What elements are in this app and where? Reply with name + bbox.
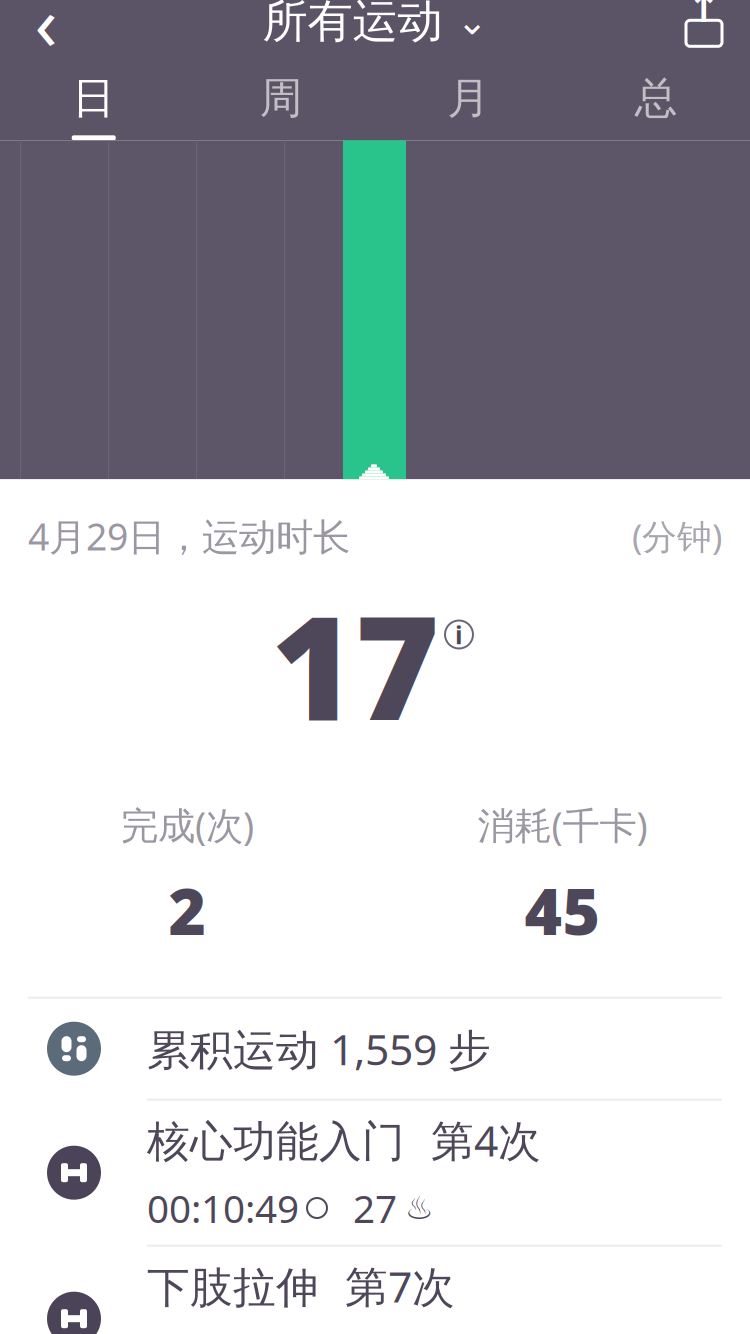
staticText: ♨	[405, 1190, 434, 1226]
button[interactable]: 下肢拉伸 第7次	[0, 1247, 750, 1334]
staticText: ‹	[34, 0, 57, 71]
button[interactable]: 累积运动 1,559 步	[0, 999, 750, 1099]
staticText: ↑	[687, 0, 721, 31]
staticText: 27	[353, 1182, 397, 1234]
staticText: 月	[447, 72, 490, 124]
button[interactable]: 总	[562, 61, 750, 140]
button[interactable]: 核心功能入门 第4次	[0, 1101, 750, 1245]
staticText: 完成(次)	[121, 800, 254, 850]
button[interactable]: 月	[375, 61, 562, 140]
staticText: 45	[524, 868, 600, 953]
staticText: 17	[271, 569, 439, 760]
button[interactable]: 周	[187, 61, 375, 140]
staticText: 4月29日，运动时长	[28, 511, 350, 561]
staticText: 核心功能入门 第4次	[147, 1112, 541, 1168]
staticText: 00:10:49	[147, 1182, 299, 1234]
button[interactable]: 所有运动	[250, 0, 499, 59]
staticText: 总	[635, 72, 678, 124]
staticText: 累积运动 1,559 步	[147, 1020, 491, 1077]
staticText: 下肢拉伸 第7次	[147, 1258, 455, 1314]
button[interactable]: 分享	[666, 0, 742, 59]
staticText: ⌄	[456, 0, 487, 42]
staticText: 周	[260, 72, 303, 124]
staticText: 2	[168, 868, 206, 953]
button[interactable]: 返回	[8, 0, 84, 59]
staticText: (分钟)	[632, 513, 722, 559]
button[interactable]: 说明	[439, 614, 479, 654]
staticText: 日	[72, 72, 115, 124]
button[interactable]: 日	[0, 61, 187, 140]
staticText: i	[455, 618, 463, 651]
staticText: 所有运动	[262, 0, 442, 49]
staticText: 消耗(千卡)	[477, 800, 647, 850]
